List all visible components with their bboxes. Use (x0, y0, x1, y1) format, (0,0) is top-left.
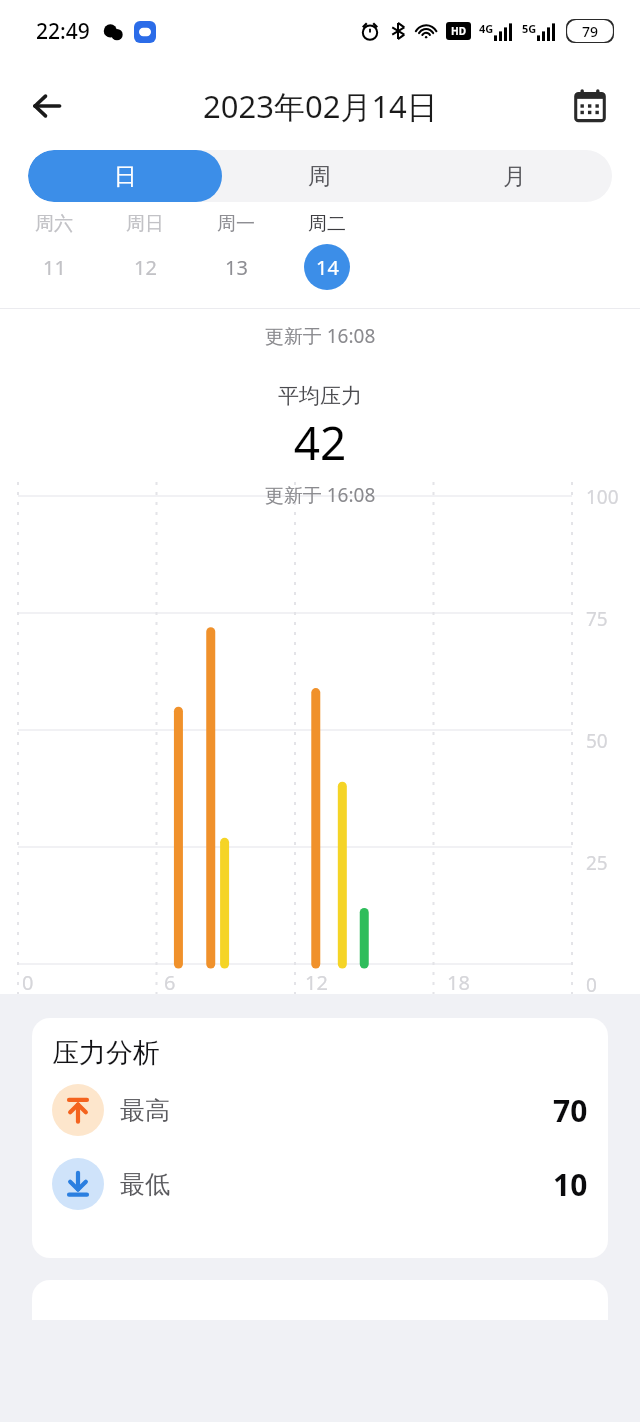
staticText: 22:49 (36, 17, 90, 46)
button[interactable]: 最高 (52, 1084, 588, 1136)
staticText: 平均压力 (0, 383, 640, 409)
staticText: 13 (225, 254, 248, 281)
staticText: 更新于 16:08 (0, 323, 640, 349)
button[interactable]: 周一 (190, 202, 281, 308)
button[interactable]: 周二 (281, 202, 372, 308)
staticText: 11 (43, 254, 66, 281)
button[interactable]: 最低 (52, 1158, 588, 1210)
staticText: 2023年02月14日 (203, 85, 438, 127)
staticText: 月 (503, 162, 526, 191)
button[interactable]: 月 (417, 150, 612, 202)
staticText: 0 (22, 969, 34, 994)
button[interactable]: 周六 (8, 202, 99, 308)
staticText: 周日 (126, 212, 164, 236)
staticText: 70 (553, 1090, 588, 1131)
staticText: 79 (582, 22, 599, 41)
staticText: 0 (586, 972, 597, 994)
staticText: 75 (586, 606, 608, 632)
staticText: 最低 (120, 1169, 170, 1200)
staticText: 更新于 16:08 (0, 482, 640, 508)
button[interactable]: Calendar (562, 78, 618, 134)
staticText: 周一 (217, 212, 255, 236)
staticText: 最高 (120, 1095, 170, 1126)
staticText: 压力分析 (52, 1036, 160, 1070)
staticText: 12 (134, 254, 157, 281)
staticText: 18 (447, 969, 470, 994)
staticText: 5G (522, 21, 537, 36)
staticText: 25 (586, 850, 608, 876)
staticText: 6 (164, 969, 176, 994)
staticText: 100 (586, 484, 619, 510)
button[interactable]: Back (18, 77, 76, 135)
staticText: 10 (553, 1164, 588, 1205)
staticText: 42 (0, 411, 640, 474)
button[interactable]: 日 (28, 150, 222, 202)
staticText: 日 (114, 162, 137, 191)
staticText: 50 (586, 728, 608, 754)
button[interactable]: 周日 (99, 202, 190, 308)
staticText: 周 (308, 162, 331, 191)
staticText: HD (451, 24, 466, 38)
button[interactable]: 压力分析 (32, 1018, 608, 1258)
staticText: 12 (305, 969, 328, 994)
staticText: 14 (316, 254, 339, 281)
staticText: 周二 (308, 212, 346, 236)
button[interactable]: 周 (222, 150, 417, 202)
staticText: 4G (479, 21, 494, 36)
staticText: 周六 (35, 212, 73, 236)
